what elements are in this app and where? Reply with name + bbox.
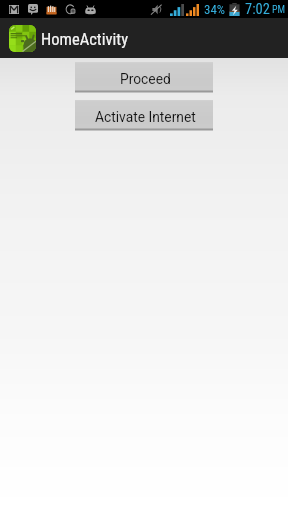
staticText: 34% bbox=[204, 2, 226, 17]
staticText: HomeActivity bbox=[41, 30, 129, 49]
button[interactable]: Proceed bbox=[75, 62, 213, 93]
staticText: PM bbox=[272, 4, 286, 16]
staticText: Activate Internet bbox=[95, 109, 196, 125]
button[interactable]: App icon, navigate home bbox=[0, 18, 288, 58]
button[interactable]: Activate Internet bbox=[75, 100, 213, 131]
staticText: 7:02 bbox=[245, 1, 270, 18]
staticText: Proceed bbox=[120, 71, 171, 87]
button[interactable]: App icon, navigate home bbox=[9, 25, 36, 52]
